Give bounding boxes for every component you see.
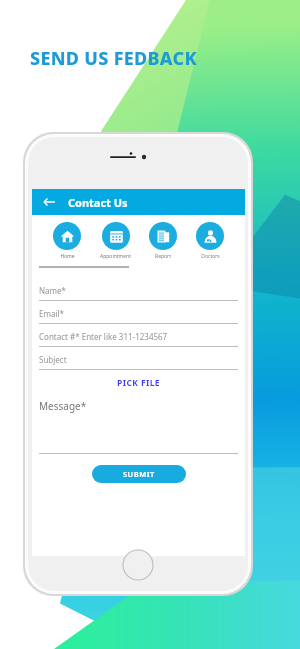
- button[interactable]: Home: [51, 222, 83, 260]
- button[interactable]: PICK FILE: [32, 377, 245, 389]
- button[interactable]: Contact #* Enter like 311-1234567: [39, 324, 238, 347]
- staticText: SEND US FEDBACK: [30, 46, 197, 71]
- button[interactable]: Name*: [39, 278, 238, 301]
- button[interactable]: Back: [32, 189, 245, 215]
- button[interactable]: Back: [40, 193, 58, 211]
- staticText: Doctors: [201, 253, 220, 260]
- staticText: Email*: [39, 308, 64, 319]
- button[interactable]: SUBMIT: [92, 465, 186, 483]
- button[interactable]: Email*: [39, 301, 238, 324]
- button[interactable]: Appointment: [98, 222, 133, 260]
- button[interactable]: Doctors: [194, 222, 226, 260]
- staticText: Message*: [39, 399, 87, 413]
- staticText: Contact #* Enter like 311-1234567: [39, 331, 168, 342]
- staticText: Subject: [39, 354, 67, 365]
- button[interactable]: Message*: [39, 399, 238, 454]
- staticText: Home: [60, 253, 75, 260]
- staticText: Report: [155, 253, 171, 260]
- button[interactable]: Subject: [39, 347, 238, 370]
- staticText: Contact Us: [68, 195, 128, 210]
- button[interactable]: Report: [147, 222, 179, 260]
- staticText: PICK FILE: [117, 377, 160, 389]
- button[interactable]: Home button: [122, 549, 154, 581]
- staticText: Appointment: [100, 253, 131, 260]
- staticText: SUBMIT: [123, 469, 155, 479]
- staticText: Name*: [39, 285, 66, 296]
